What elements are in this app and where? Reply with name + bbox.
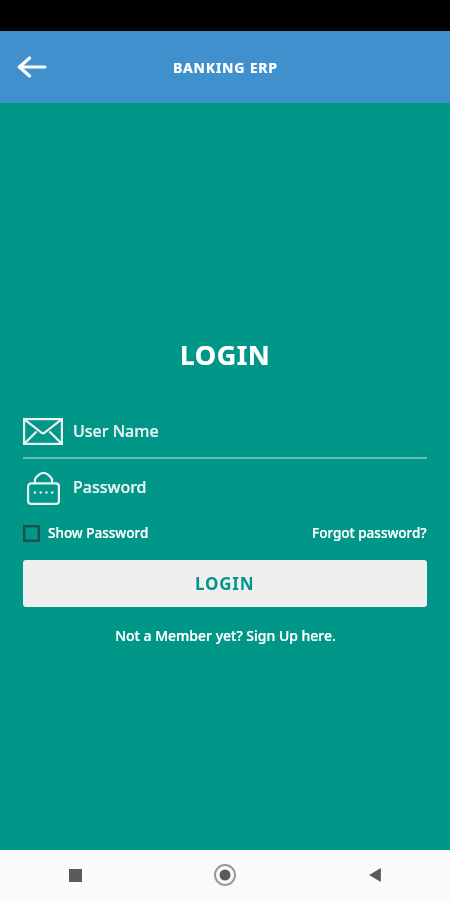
button[interactable]: Back <box>8 43 56 91</box>
button[interactable]: Recent apps <box>0 850 150 900</box>
staticText: LOGIN <box>195 572 255 595</box>
staticText: LOGIN <box>0 336 450 373</box>
button[interactable]: User Name <box>23 411 427 451</box>
staticText: Show Password <box>48 524 149 542</box>
staticText: Password <box>73 476 147 498</box>
button[interactable]: Forgot password? <box>312 524 427 542</box>
button[interactable]: LOGIN <box>23 560 427 607</box>
staticText: Forgot password? <box>312 524 427 542</box>
button[interactable]: Back <box>300 850 450 900</box>
button[interactable]: Show Password <box>23 524 153 542</box>
button[interactable]: Home <box>150 850 300 900</box>
button[interactable]: Password <box>23 465 427 509</box>
staticText: User Name <box>73 420 159 442</box>
button[interactable]: Not a Member yet? Sign Up here. <box>0 626 450 645</box>
staticText: BANKING ERP <box>173 58 278 77</box>
staticText: Not a Member yet? Sign Up here. <box>115 626 336 645</box>
